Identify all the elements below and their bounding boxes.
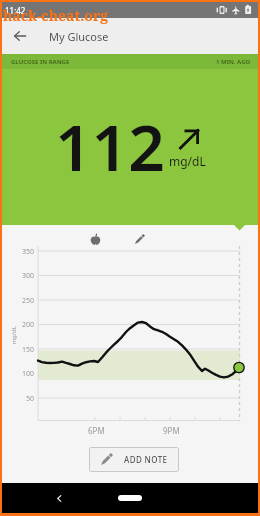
button[interactable]: Back — [50, 489, 68, 507]
button[interactable]: Home — [118, 495, 142, 501]
staticText: ADD NOTE — [124, 454, 168, 465]
staticText: mg/dL — [169, 153, 206, 169]
staticText: 200 — [19, 320, 34, 330]
staticText: 350 — [19, 247, 34, 257]
button[interactable]: ADD NOTE — [89, 447, 179, 472]
staticText: 11:42 — [5, 5, 26, 16]
staticText: hack-cheat.org — [3, 6, 109, 25]
staticText: 50 — [19, 394, 34, 404]
staticText: 1 MIN. AGO — [216, 58, 251, 66]
staticText: 9PM — [163, 425, 180, 436]
staticText: 112 — [55, 103, 165, 190]
button[interactable]: Note entry — [129, 229, 149, 249]
button[interactable]: Food entry — [85, 229, 105, 249]
staticText: 300 — [19, 271, 34, 281]
staticText: 250 — [19, 296, 34, 306]
staticText: 6PM — [88, 425, 105, 436]
staticText: 100 — [19, 369, 34, 379]
staticText: GLUCOSE IN RANGE — [11, 58, 70, 66]
staticText: 150 — [19, 345, 34, 355]
button[interactable]: Back — [2, 18, 38, 54]
staticText: mg/dL — [9, 325, 17, 344]
staticText: My Glucose — [49, 29, 109, 44]
